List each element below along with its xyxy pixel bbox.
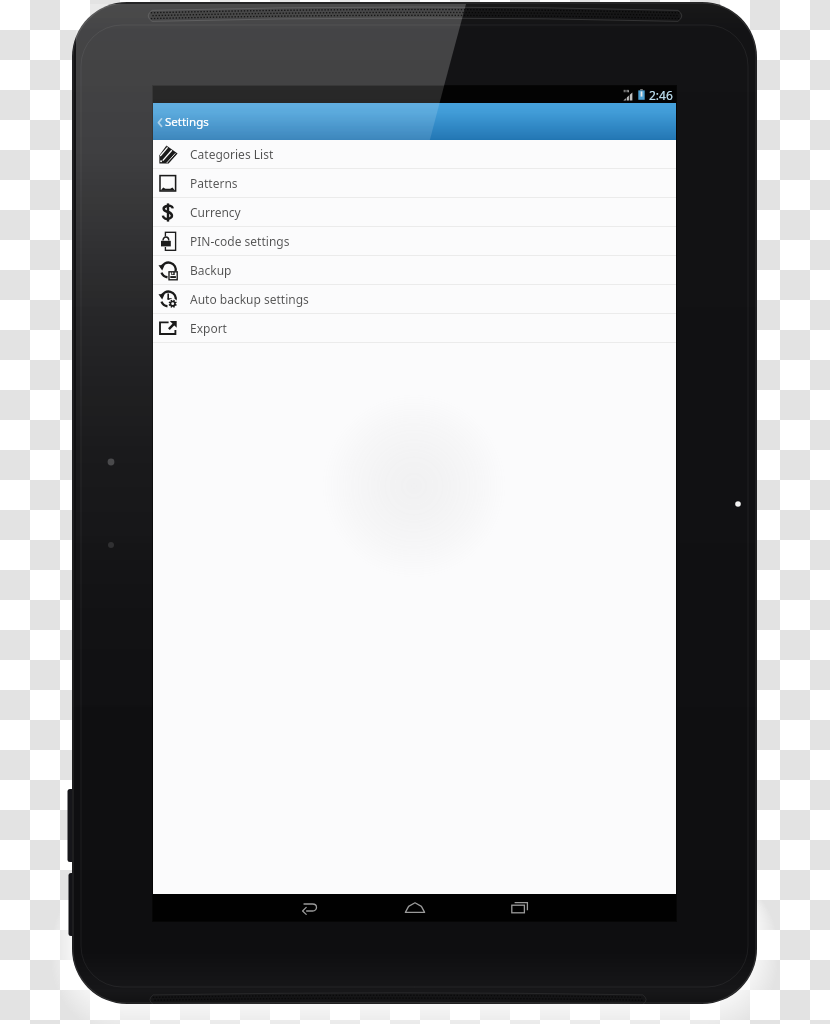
staticText: Patterns — [190, 175, 238, 191]
staticText: Backup — [190, 262, 232, 278]
staticText: Auto backup settings — [190, 291, 309, 307]
button[interactable]: Auto backup settings — [153, 285, 676, 313]
staticText: Export — [190, 320, 227, 336]
button[interactable]: Export — [153, 314, 676, 342]
staticText: Currency — [190, 204, 241, 220]
button[interactable]: Recent apps — [489, 894, 551, 921]
button[interactable]: Patterns — [153, 169, 676, 197]
staticText: PIN-code settings — [190, 233, 290, 249]
staticText: 2:46 — [649, 87, 673, 103]
staticText: Categories List — [190, 146, 274, 162]
staticText: Settings — [165, 114, 209, 130]
button[interactable]: Currency — [153, 198, 676, 226]
button[interactable]: Settings — [153, 103, 676, 140]
button[interactable]: PIN-code settings — [153, 227, 676, 255]
button[interactable]: Categories List — [153, 140, 676, 168]
button[interactable]: Home — [384, 894, 446, 921]
button[interactable]: Back — [279, 894, 341, 921]
button[interactable]: Backup — [153, 256, 676, 284]
